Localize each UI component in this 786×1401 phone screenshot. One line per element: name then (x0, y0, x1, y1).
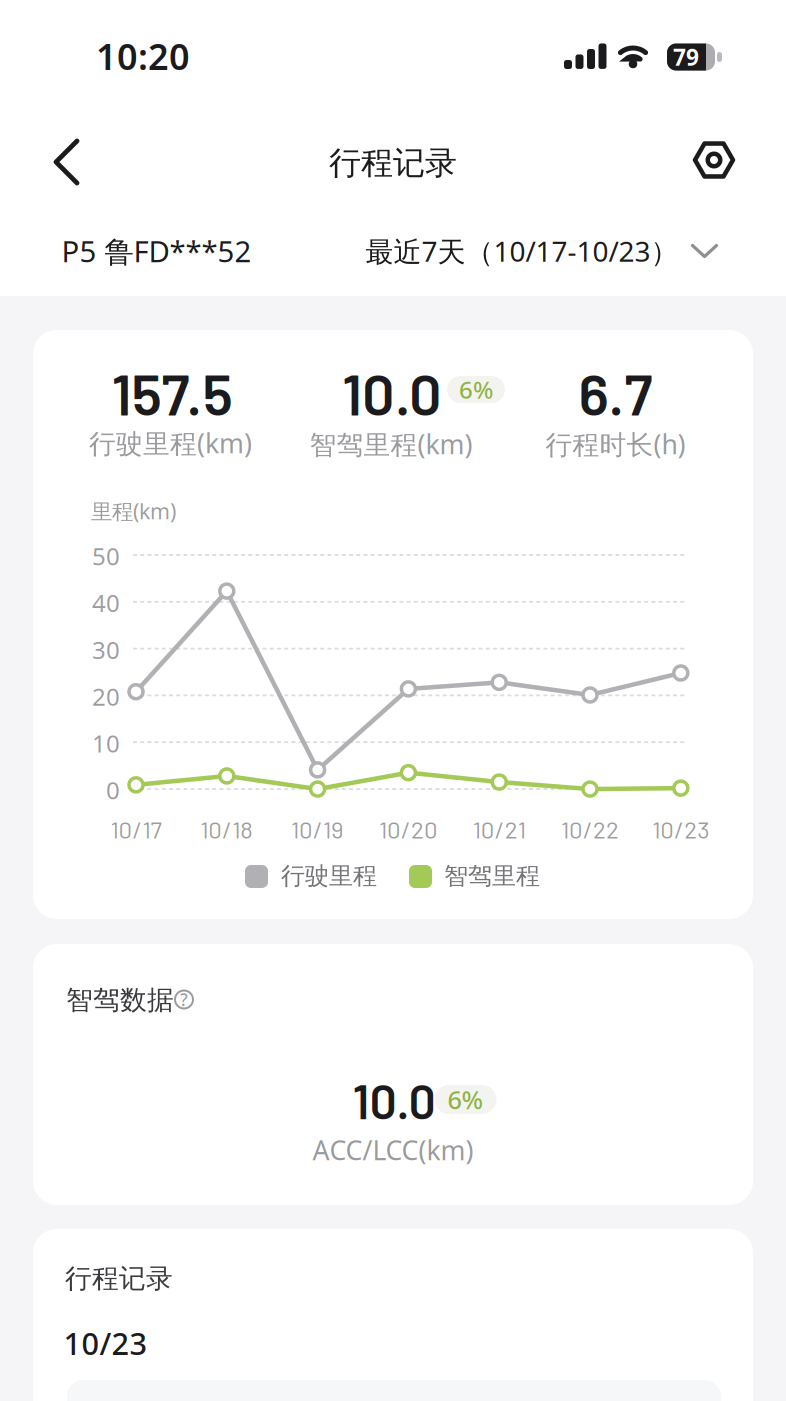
staticText: 行程记录 (329, 143, 457, 183)
staticText: 157.5 (111, 358, 232, 427)
staticText: 10/19 (291, 815, 344, 843)
staticText: ACC/LCC(km) (312, 1132, 473, 1168)
button[interactable]: About 智驾数据 (174, 988, 194, 1011)
staticText: 行程时长(h) (545, 426, 685, 462)
staticText: 行驶里程 (281, 861, 377, 891)
staticText: 行驶里程(km) (89, 425, 252, 461)
staticText: 20 (92, 680, 120, 712)
staticText: 10:20 (96, 32, 190, 80)
staticText: 6.7 (578, 358, 652, 427)
staticText: 50 (92, 540, 120, 572)
staticText: 6% (447, 1083, 483, 1116)
button[interactable]: P5 鲁FD***52 (61, 231, 321, 270)
button[interactable]: Settings (684, 130, 744, 190)
staticText: 40 (92, 587, 120, 619)
staticText: 10.0 (342, 358, 442, 427)
staticText: 里程(km) (91, 497, 176, 525)
staticText: 10/23 (652, 815, 709, 843)
staticText: 79 (673, 42, 699, 72)
staticText: 10/20 (379, 815, 438, 843)
staticText: 行程记录 (65, 1262, 173, 1295)
staticText: 10/23 (63, 1323, 147, 1363)
staticText: 智驾里程 (444, 861, 540, 891)
staticText: 10/21 (473, 815, 526, 843)
button[interactable]: Back (36, 132, 96, 192)
staticText: 10/17 (110, 815, 161, 843)
staticText: 智驾数据 (66, 984, 174, 1016)
staticText: P5 鲁FD***52 (61, 231, 251, 270)
staticText: ? (180, 988, 188, 1011)
staticText: 30 (92, 634, 120, 666)
staticText: 最近7天（10/17-10/23） (365, 232, 678, 270)
button[interactable]: 最近7天（10/17-10/23） (365, 232, 718, 270)
staticText: 10/18 (200, 815, 253, 843)
staticText: 10 (92, 727, 120, 759)
staticText: 0 (106, 774, 120, 806)
staticText: 10.0 (352, 1071, 435, 1129)
staticText: 10/22 (561, 815, 619, 843)
staticText: 智驾里程(km) (309, 426, 472, 462)
staticText: 6% (459, 374, 493, 405)
